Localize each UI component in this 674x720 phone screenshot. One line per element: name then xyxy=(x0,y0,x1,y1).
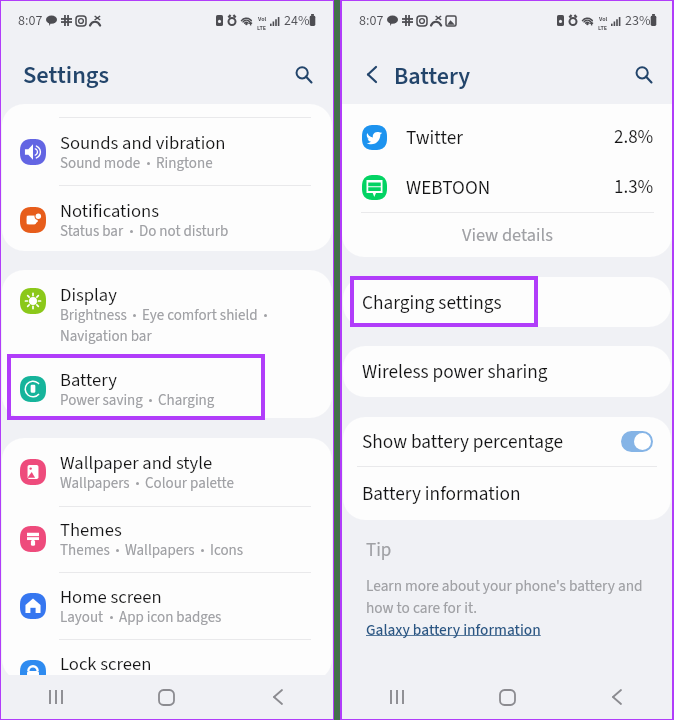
staticText: Home screen xyxy=(60,584,162,610)
staticText: Settings xyxy=(23,58,110,93)
button[interactable]: Charging settings xyxy=(343,277,671,327)
staticText: Battery xyxy=(394,59,471,93)
staticText: Battery xyxy=(60,367,117,393)
staticText: Lock screen xyxy=(60,651,152,677)
staticText: App icon badges xyxy=(119,607,222,628)
button[interactable]: Show battery percentage xyxy=(621,431,653,452)
staticText: Status bar xyxy=(60,221,124,242)
staticText: Wallpapers xyxy=(125,540,195,561)
staticText: Charging settings xyxy=(362,289,502,316)
button[interactable]: Twitter xyxy=(342,112,672,162)
staticText: Themes xyxy=(60,517,122,543)
button[interactable]: Recents xyxy=(1,675,111,719)
button[interactable]: Home xyxy=(111,675,222,719)
button[interactable]: Back xyxy=(358,61,385,88)
staticText: 8:07 xyxy=(18,11,43,31)
staticText: Brightness xyxy=(60,305,127,326)
staticText: Show battery percentage xyxy=(362,428,563,455)
staticText: Themes xyxy=(60,540,110,561)
staticText: Layout xyxy=(60,607,104,628)
staticText: 24% xyxy=(284,11,310,31)
button[interactable]: Themes xyxy=(2,505,332,572)
button[interactable]: Galaxy battery information xyxy=(366,619,541,641)
staticText: WEBTOON xyxy=(406,174,491,201)
staticText: Navigation bar xyxy=(60,326,152,347)
button[interactable]: Display xyxy=(2,270,332,355)
button[interactable]: Back xyxy=(562,675,672,719)
staticText: Tip xyxy=(366,537,392,564)
button[interactable]: Lock screen xyxy=(2,639,332,681)
button[interactable]: WEBTOON xyxy=(342,162,672,212)
staticText: Vol xyxy=(599,15,608,24)
staticText: Eye comfort shield xyxy=(142,305,258,326)
staticText: Icons xyxy=(210,540,244,561)
staticText: Wireless power sharing xyxy=(362,358,548,385)
button[interactable]: Search xyxy=(627,58,659,90)
button[interactable]: Sounds and vibration xyxy=(2,118,332,185)
button[interactable]: Recents xyxy=(342,675,452,719)
staticText: View details xyxy=(462,222,553,248)
staticText: Display xyxy=(60,282,117,308)
button[interactable]: Notifications xyxy=(2,186,332,251)
staticText: Notifications xyxy=(60,198,159,224)
button[interactable]: Search xyxy=(287,58,319,90)
staticText: LTE xyxy=(598,24,608,33)
button[interactable]: Wallpaper and style xyxy=(2,438,332,505)
button[interactable]: Battery xyxy=(2,355,332,418)
staticText: 2.8% xyxy=(614,124,654,151)
button[interactable]: Wireless power sharing xyxy=(343,346,671,397)
button[interactable]: Home screen xyxy=(2,572,332,639)
staticText: Twitter xyxy=(406,124,463,151)
staticText: Sounds and vibration xyxy=(60,130,226,156)
staticText: Do not disturb xyxy=(139,221,229,242)
staticText: Charging xyxy=(158,390,215,411)
button[interactable]: Battery information xyxy=(343,467,671,520)
staticText: Sound mode xyxy=(60,153,141,174)
button[interactable]: View details xyxy=(342,213,672,257)
button[interactable]: Back xyxy=(222,675,333,719)
staticText: Colour palette xyxy=(145,473,234,494)
staticText: LTE xyxy=(257,24,267,33)
button[interactable]: Home xyxy=(452,675,562,719)
staticText: Wallpapers xyxy=(60,473,130,494)
staticText: Power saving xyxy=(60,390,143,411)
staticText: Ringtone xyxy=(156,153,213,174)
staticText: 23% xyxy=(625,11,651,31)
button[interactable]: Show battery percentage xyxy=(343,417,671,466)
staticText: 8:07 xyxy=(359,11,384,31)
staticText: Learn more about your phone's battery an… xyxy=(366,575,643,619)
staticText: Battery information xyxy=(362,480,521,507)
staticText: 1.3% xyxy=(614,174,654,201)
staticText: Vol xyxy=(258,15,267,24)
staticText: Wallpaper and style xyxy=(60,450,213,476)
